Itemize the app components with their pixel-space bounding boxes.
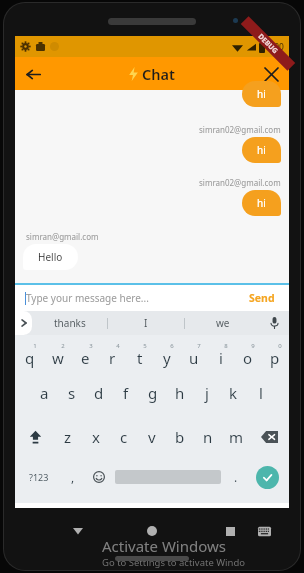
button[interactable]: Voice input — [261, 311, 287, 335]
staticText: hi — [257, 87, 266, 101]
button[interactable]: Emoji — [85, 462, 112, 492]
button[interactable]: Recent apps — [217, 518, 243, 544]
button[interactable]: Close — [257, 60, 285, 88]
button[interactable]: 4 — [99, 339, 126, 369]
staticText: 1:00 — [267, 41, 284, 53]
button[interactable]: m — [222, 422, 250, 452]
button[interactable]: hi — [242, 137, 281, 163]
button[interactable]: ?123 — [17, 462, 60, 492]
staticText: z — [64, 427, 72, 447]
staticText: I — [144, 316, 148, 330]
button[interactable]: Back — [65, 518, 91, 544]
staticText: 5 — [143, 342, 147, 350]
button[interactable]: 2 — [44, 339, 72, 369]
staticText: thanks — [54, 316, 86, 330]
button[interactable]: k — [220, 378, 247, 408]
staticText: m — [229, 427, 244, 447]
staticText: 8 — [224, 342, 228, 350]
button[interactable]: v — [138, 422, 166, 452]
staticText: simran02@gmail.com — [199, 124, 281, 135]
staticText: 2 — [61, 342, 65, 350]
staticText: b — [175, 427, 185, 447]
button[interactable]: x — [82, 422, 110, 452]
button[interactable]: z — [54, 422, 82, 452]
button[interactable]: More suggestions — [15, 311, 32, 335]
staticText: Go to Settings to activate Windo — [102, 556, 245, 569]
button[interactable]: I — [108, 311, 184, 335]
button[interactable]: Send — [245, 288, 279, 308]
button[interactable]: 5 — [126, 339, 153, 369]
staticText: simran@gmail.com — [26, 231, 99, 242]
staticText: f — [123, 383, 129, 403]
button[interactable]: Shift — [16, 422, 54, 452]
staticText: simran02@gmail.com — [199, 177, 281, 188]
staticText: i — [219, 348, 223, 368]
staticText: 0 — [278, 342, 282, 350]
button[interactable]: b — [166, 422, 194, 452]
button[interactable]: n — [194, 422, 222, 452]
staticText: y — [163, 348, 171, 368]
button[interactable]: 9 — [234, 339, 261, 369]
staticText: hi — [257, 143, 266, 157]
staticText: j — [205, 383, 209, 403]
staticText: Activate Windows — [102, 536, 226, 556]
staticText: w — [52, 348, 64, 368]
staticText: Hello — [38, 250, 63, 264]
button[interactable]: f — [112, 378, 139, 408]
button[interactable]: s — [58, 378, 85, 408]
button[interactable]: we — [185, 311, 261, 335]
staticText: s — [68, 383, 76, 403]
button[interactable]: 8 — [207, 339, 234, 369]
button[interactable]: 3 — [72, 339, 99, 369]
staticText: x — [92, 427, 100, 447]
button[interactable]: a — [30, 378, 58, 408]
staticText: 1 — [33, 342, 37, 350]
button[interactable]: 7 — [180, 339, 207, 369]
staticText: k — [229, 383, 238, 403]
staticText: c — [120, 427, 128, 447]
staticText: r — [109, 348, 116, 368]
button[interactable]: , — [60, 462, 85, 492]
button[interactable]: 0 — [261, 339, 288, 369]
staticText: hi — [257, 196, 266, 210]
button[interactable]: Enter — [256, 466, 279, 489]
button[interactable]: Switch keyboard — [251, 518, 277, 544]
button[interactable]: Hello — [23, 244, 78, 270]
staticText: h — [175, 383, 185, 403]
staticText: , — [71, 469, 75, 485]
button[interactable]: hi — [242, 190, 281, 216]
staticText: a — [40, 383, 49, 403]
button[interactable]: h — [166, 378, 193, 408]
staticText: t — [137, 348, 143, 368]
staticText: o — [243, 348, 253, 368]
staticText: Chat — [142, 64, 175, 84]
button[interactable]: d — [85, 378, 112, 408]
staticText: . — [234, 469, 238, 485]
staticText: u — [189, 348, 199, 368]
button[interactable]: . — [224, 462, 248, 492]
button[interactable]: 1 — [16, 339, 44, 369]
button[interactable]: c — [110, 422, 138, 452]
button[interactable]: l — [247, 378, 274, 408]
staticText: 4 — [116, 342, 120, 350]
staticText: 3 — [89, 342, 93, 350]
staticText: DEBUG — [256, 32, 280, 56]
button[interactable]: g — [139, 378, 166, 408]
button[interactable]: Backspace — [250, 422, 288, 452]
button[interactable]: 6 — [153, 339, 180, 369]
button[interactable]: Type your message here... — [26, 291, 245, 305]
staticText: p — [270, 348, 280, 368]
staticText: q — [25, 348, 35, 368]
staticText: ?123 — [29, 471, 49, 483]
button[interactable]: Home — [139, 518, 165, 544]
button[interactable]: hi — [242, 81, 281, 107]
staticText: Send — [249, 291, 275, 305]
button[interactable]: thanks — [32, 311, 107, 335]
staticText: 7 — [197, 342, 201, 350]
staticText: e — [81, 348, 90, 368]
staticText: v — [148, 427, 156, 447]
button[interactable]: j — [193, 378, 220, 408]
button[interactable]: Back — [19, 60, 47, 88]
staticText: n — [203, 427, 213, 447]
